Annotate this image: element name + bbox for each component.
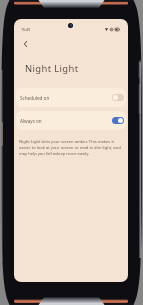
staticText: Scheduled on (20, 95, 50, 101)
button[interactable]: Back (17, 35, 34, 52)
staticText: 15:45 (21, 27, 31, 32)
button[interactable]: Scheduled on (16, 88, 126, 107)
button[interactable]: Always on (16, 111, 126, 130)
staticText: Night Light (25, 62, 79, 75)
staticText: Always on (20, 118, 42, 124)
staticText: Night Light tints your screen amber. Thi… (19, 139, 122, 157)
